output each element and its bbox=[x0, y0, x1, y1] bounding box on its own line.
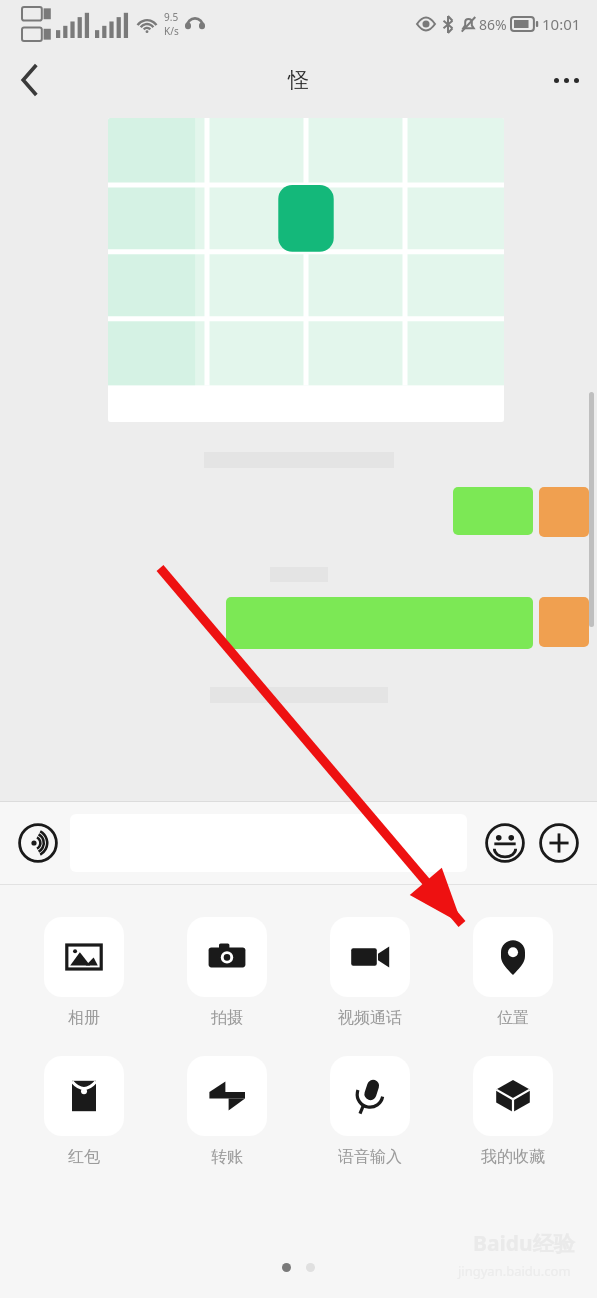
button[interactable] bbox=[539, 597, 589, 647]
staticText: 转账 bbox=[211, 1147, 243, 1167]
button[interactable]: More options bbox=[535, 49, 597, 111]
button[interactable] bbox=[226, 597, 533, 649]
button[interactable]: 红包 bbox=[25, 1056, 143, 1167]
staticText: 我的收藏 bbox=[481, 1147, 545, 1167]
staticText: 视频通话 bbox=[338, 1008, 402, 1028]
staticText: 语音输入 bbox=[338, 1147, 402, 1167]
staticText: 86% bbox=[479, 15, 507, 34]
staticText: jingyan.baidu.com bbox=[458, 1262, 571, 1280]
button[interactable] bbox=[453, 487, 533, 535]
button[interactable]: Emoji bbox=[481, 819, 529, 867]
button[interactable]: 我的收藏 bbox=[454, 1056, 572, 1167]
button[interactable]: 视频通话 bbox=[311, 917, 429, 1028]
staticText: K/s bbox=[164, 24, 179, 38]
staticText: 9.5 bbox=[164, 10, 179, 24]
button[interactable]: 转账 bbox=[168, 1056, 286, 1167]
button[interactable]: 相册 bbox=[25, 917, 143, 1028]
button[interactable]: 位置 bbox=[454, 917, 572, 1028]
button[interactable]: Back bbox=[0, 50, 60, 110]
button[interactable]: Voice input bbox=[14, 819, 62, 867]
staticText: 红包 bbox=[68, 1147, 100, 1167]
staticText: 位置 bbox=[497, 1008, 529, 1028]
button[interactable]: 拍摄 bbox=[168, 917, 286, 1028]
button[interactable] bbox=[108, 118, 504, 422]
button[interactable]: 语音输入 bbox=[311, 1056, 429, 1167]
staticText: 10:01 bbox=[542, 14, 581, 34]
staticText: 拍摄 bbox=[211, 1008, 243, 1028]
button[interactable] bbox=[539, 487, 589, 537]
staticText: 怪 bbox=[288, 67, 309, 93]
button[interactable] bbox=[70, 814, 467, 872]
staticText: 相册 bbox=[68, 1008, 100, 1028]
button[interactable]: More attachments bbox=[535, 819, 583, 867]
staticText: Baidu经验 bbox=[473, 1229, 575, 1258]
